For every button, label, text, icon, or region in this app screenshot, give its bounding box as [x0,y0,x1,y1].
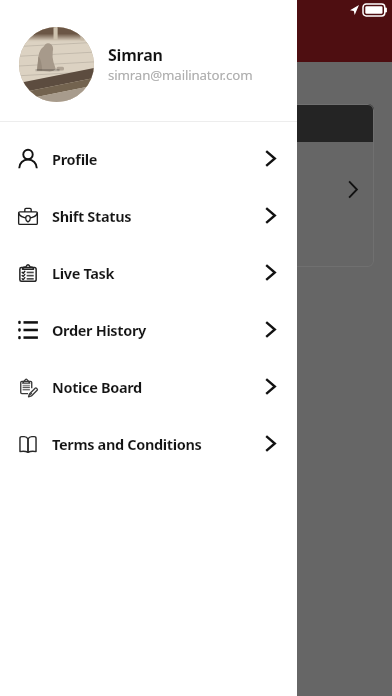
button[interactable]: Notice Board [0,358,297,415]
button[interactable]: Simran [0,27,297,102]
button[interactable]: Open task details [16,104,374,267]
staticText: Simran [108,44,163,66]
staticText: Profile [52,149,98,169]
button[interactable]: Profile [0,130,297,187]
staticText: Order History [52,320,147,340]
staticText: simran@mailinator.com [108,66,253,84]
button[interactable]: Terms and Conditions [0,415,297,472]
button[interactable]: Live Task [0,244,297,301]
button[interactable]: Shift Status [0,187,297,244]
button[interactable]: Order History [0,301,297,358]
staticText: Shift Status [52,206,132,226]
staticText: Live Task [52,263,115,283]
button[interactable]: Close navigation drawer [0,62,392,696]
staticText: Terms and Conditions [52,434,202,454]
staticText: Notice Board [52,377,142,397]
